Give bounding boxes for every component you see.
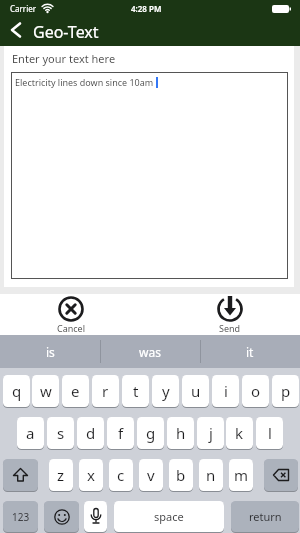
button[interactable]: y <box>152 375 179 407</box>
button[interactable]: c <box>109 459 133 491</box>
button[interactable] <box>3 459 38 491</box>
staticText: g <box>146 423 156 443</box>
button[interactable]: n <box>199 459 223 491</box>
button[interactable]: a <box>17 417 44 449</box>
button[interactable]: b <box>169 459 193 491</box>
staticText: l <box>268 423 272 443</box>
staticText: is <box>46 344 55 360</box>
staticText: m <box>234 465 249 485</box>
staticText: Carrier <box>10 3 37 14</box>
button[interactable]: q <box>3 375 30 407</box>
staticText: it <box>246 344 254 360</box>
button[interactable]: i <box>212 375 239 407</box>
staticText: w <box>40 381 52 401</box>
button[interactable]: d <box>77 417 104 449</box>
button[interactable]: e <box>62 375 89 407</box>
button[interactable]: was <box>100 335 200 368</box>
staticText: t <box>133 381 139 401</box>
staticText: return <box>249 509 282 524</box>
button[interactable]: space <box>114 501 224 532</box>
staticText: d <box>86 423 96 443</box>
staticText: b <box>176 465 186 485</box>
button[interactable]: return <box>231 501 299 532</box>
button[interactable]: it <box>200 335 300 368</box>
staticText: k <box>235 423 244 443</box>
staticText: i <box>224 381 228 401</box>
staticText: 4:28 PM <box>131 3 162 14</box>
button[interactable]: is <box>0 335 100 368</box>
button[interactable]: Cancel <box>46 296 96 335</box>
button[interactable]: g <box>137 417 164 449</box>
staticText: v <box>147 465 155 485</box>
button[interactable]: Send <box>207 296 252 335</box>
staticText: r <box>102 381 109 401</box>
button[interactable]: m <box>229 459 253 491</box>
button[interactable]: 123 <box>3 501 38 532</box>
button[interactable] <box>84 501 107 532</box>
staticText: p <box>281 381 291 401</box>
staticText: a <box>26 423 35 443</box>
staticText: f <box>118 423 124 443</box>
staticText: q <box>12 381 22 401</box>
button[interactable]: x <box>79 459 103 491</box>
button[interactable]: v <box>139 459 163 491</box>
button[interactable]: t <box>122 375 149 407</box>
staticText: x <box>87 465 95 485</box>
staticText: Send <box>219 322 241 334</box>
button[interactable] <box>10 22 22 38</box>
staticText: h <box>176 423 186 443</box>
staticText: n <box>206 465 216 485</box>
staticText: was <box>139 344 161 360</box>
staticText: s <box>57 423 65 443</box>
staticText: y <box>162 381 170 401</box>
staticText: Geo-Text <box>33 21 99 43</box>
button[interactable]: l <box>256 417 283 449</box>
button[interactable] <box>44 501 79 532</box>
button[interactable]: Electricity lines down since 10am <box>11 72 288 279</box>
staticText: u <box>191 381 201 401</box>
button[interactable]: k <box>226 417 253 449</box>
button[interactable]: r <box>92 375 119 407</box>
staticText: z <box>57 465 65 485</box>
staticText: Cancel <box>57 322 86 334</box>
button[interactable]: p <box>272 375 299 407</box>
button[interactable]: u <box>182 375 209 407</box>
button[interactable]: o <box>242 375 269 407</box>
staticText: Enter your text here <box>12 51 116 66</box>
button[interactable]: j <box>197 417 224 449</box>
button[interactable]: z <box>49 459 73 491</box>
staticText: space <box>154 509 184 524</box>
button[interactable]: s <box>47 417 74 449</box>
button[interactable]: h <box>167 417 194 449</box>
button[interactable]: f <box>107 417 134 449</box>
staticText: 123 <box>12 510 30 524</box>
button[interactable]: w <box>32 375 59 407</box>
staticText: j <box>209 423 213 443</box>
staticText: o <box>251 381 261 401</box>
button[interactable] <box>264 459 298 491</box>
staticText: c <box>117 465 125 485</box>
staticText: Electricity lines down since 10am <box>15 76 156 88</box>
staticText: e <box>71 381 80 401</box>
